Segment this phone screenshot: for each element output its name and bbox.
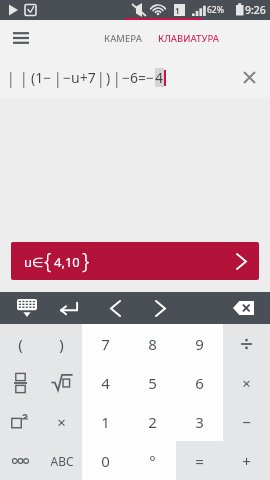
button[interactable]: Menu — [5, 22, 37, 54]
button[interactable]: u∈ — [11, 242, 259, 280]
staticText: | — [96, 66, 106, 89]
staticText: 5 — [148, 373, 157, 393]
staticText: 4 — [101, 373, 110, 393]
button[interactable]: ABC — [41, 441, 82, 480]
button[interactable]: Hide keyboard — [12, 293, 42, 323]
staticText: ° — [149, 451, 156, 471]
staticText: = — [195, 451, 204, 471]
staticText: КАМЕРА — [104, 32, 142, 45]
staticText: 6 — [195, 373, 204, 393]
staticText: ) — [106, 68, 111, 87]
staticText: + — [242, 451, 251, 471]
staticText: −6=− — [122, 68, 155, 87]
staticText: { — [44, 247, 52, 276]
button[interactable]: × — [223, 363, 270, 402]
button[interactable]: 4 — [82, 363, 129, 402]
staticText: 2 — [148, 412, 157, 432]
button[interactable]: = — [176, 441, 223, 480]
button[interactable]: ° — [129, 441, 176, 480]
button[interactable]: Square root — [41, 363, 82, 402]
staticText: ( — [18, 334, 23, 354]
staticText: 7 — [101, 334, 110, 354]
staticText: 4,10 — [54, 253, 80, 271]
staticText: 8 — [148, 334, 157, 354]
button[interactable]: ) — [41, 324, 82, 363]
button[interactable]: 0 — [82, 441, 129, 480]
staticText: 3 — [195, 412, 204, 432]
button[interactable]: Clear — [236, 64, 262, 90]
staticText: × — [242, 373, 251, 393]
button[interactable]: 2 — [129, 402, 176, 441]
button[interactable]: 6 — [176, 363, 223, 402]
staticText: 19:26 — [239, 3, 266, 17]
staticText: 4 — [155, 68, 164, 87]
button[interactable]: Fraction — [0, 363, 41, 402]
staticText: ) — [59, 334, 64, 354]
staticText: − — [242, 412, 251, 432]
button[interactable]: More symbols — [0, 441, 41, 480]
button[interactable]: Power — [0, 402, 41, 441]
staticText: u∈ — [24, 253, 44, 271]
button[interactable]: 3 — [176, 402, 223, 441]
staticText: −u+7 — [63, 68, 96, 87]
staticText: 62% — [207, 4, 224, 16]
button[interactable]: Enter — [54, 293, 84, 323]
staticText: | — [53, 66, 63, 89]
staticText: | — [6, 66, 16, 89]
staticText: (1− — [31, 68, 52, 87]
button[interactable]: Move left — [100, 293, 130, 323]
staticText: ABC — [50, 453, 74, 469]
staticText: 0 — [101, 451, 110, 471]
button[interactable]: 9 — [176, 324, 223, 363]
button[interactable]: КЛАВИАТУРА — [152, 26, 225, 51]
staticText: КЛАВИАТУРА — [158, 32, 219, 45]
button[interactable]: + — [223, 441, 270, 480]
button[interactable]: Backspace — [228, 293, 258, 323]
button[interactable]: − — [223, 402, 270, 441]
button[interactable]: ( — [0, 324, 41, 363]
button[interactable]: 7 — [82, 324, 129, 363]
staticText: | — [19, 66, 29, 89]
staticText: } — [82, 247, 90, 276]
button[interactable]: 8 — [129, 324, 176, 363]
staticText: × — [57, 412, 66, 432]
button[interactable]: Move right — [145, 293, 175, 323]
button[interactable]: Divide — [223, 324, 270, 363]
button[interactable]: КАМЕРА — [98, 26, 148, 51]
staticText: 1 — [101, 412, 110, 432]
button[interactable]: 5 — [129, 363, 176, 402]
staticText: 1 — [175, 5, 180, 16]
button[interactable]: 1 — [82, 402, 129, 441]
staticText: | — [112, 66, 122, 89]
button[interactable]: × — [41, 402, 82, 441]
staticText: 9 — [195, 334, 204, 354]
